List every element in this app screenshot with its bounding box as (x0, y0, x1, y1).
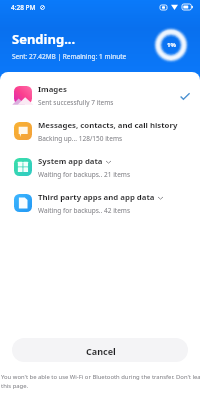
staticText: Cancel (86, 345, 116, 357)
button[interactable]: Cancel (12, 338, 188, 362)
staticText: System app data (38, 156, 103, 167)
other: Completed (180, 91, 190, 101)
staticText: Waiting for backups.. 21 items (38, 170, 131, 179)
staticText: Sent: 27.42MB | Remaining: 1 minute (12, 52, 127, 61)
button[interactable]: System app data (0, 149, 200, 185)
button[interactable]: Messages, contacts, and call history (0, 113, 200, 149)
button[interactable]: Images (0, 77, 200, 113)
staticText: 4:28 PM (11, 3, 36, 12)
staticText: Backing up... 128/150 items (38, 134, 123, 143)
staticText: Messages, contacts, and call history (38, 120, 178, 131)
staticText: Images (38, 84, 67, 95)
staticText: Waiting for backups.. 42 items (38, 206, 131, 215)
staticText: Sent successfully 7 items (38, 98, 114, 107)
staticText: Third party apps and app data (38, 192, 155, 203)
staticText: You won't be able to use Wi-Fi or Blueto… (1, 373, 200, 390)
staticText: 1% (167, 41, 176, 49)
button[interactable]: Third party apps and app data (0, 185, 200, 221)
staticText: Sending... (12, 30, 76, 48)
